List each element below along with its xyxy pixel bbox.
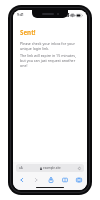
- button[interactable]: aA: [16, 164, 84, 172]
- staticText: Sent!: [20, 28, 36, 36]
- button[interactable]: Bookmarks: [59, 174, 70, 185]
- button[interactable]: Share: [45, 174, 56, 185]
- staticText: aA: [19, 166, 23, 170]
- staticText: The link will expire in 15 minutes, but …: [20, 53, 80, 68]
- staticText: example.site: [43, 166, 61, 170]
- button[interactable]: Back: [16, 174, 27, 185]
- button[interactable]: Forward: [30, 174, 41, 185]
- button[interactable]: Tabs: [73, 174, 84, 185]
- staticText: 9:41: [17, 12, 24, 17]
- staticText: Please check your inbox for your unique …: [20, 41, 80, 51]
